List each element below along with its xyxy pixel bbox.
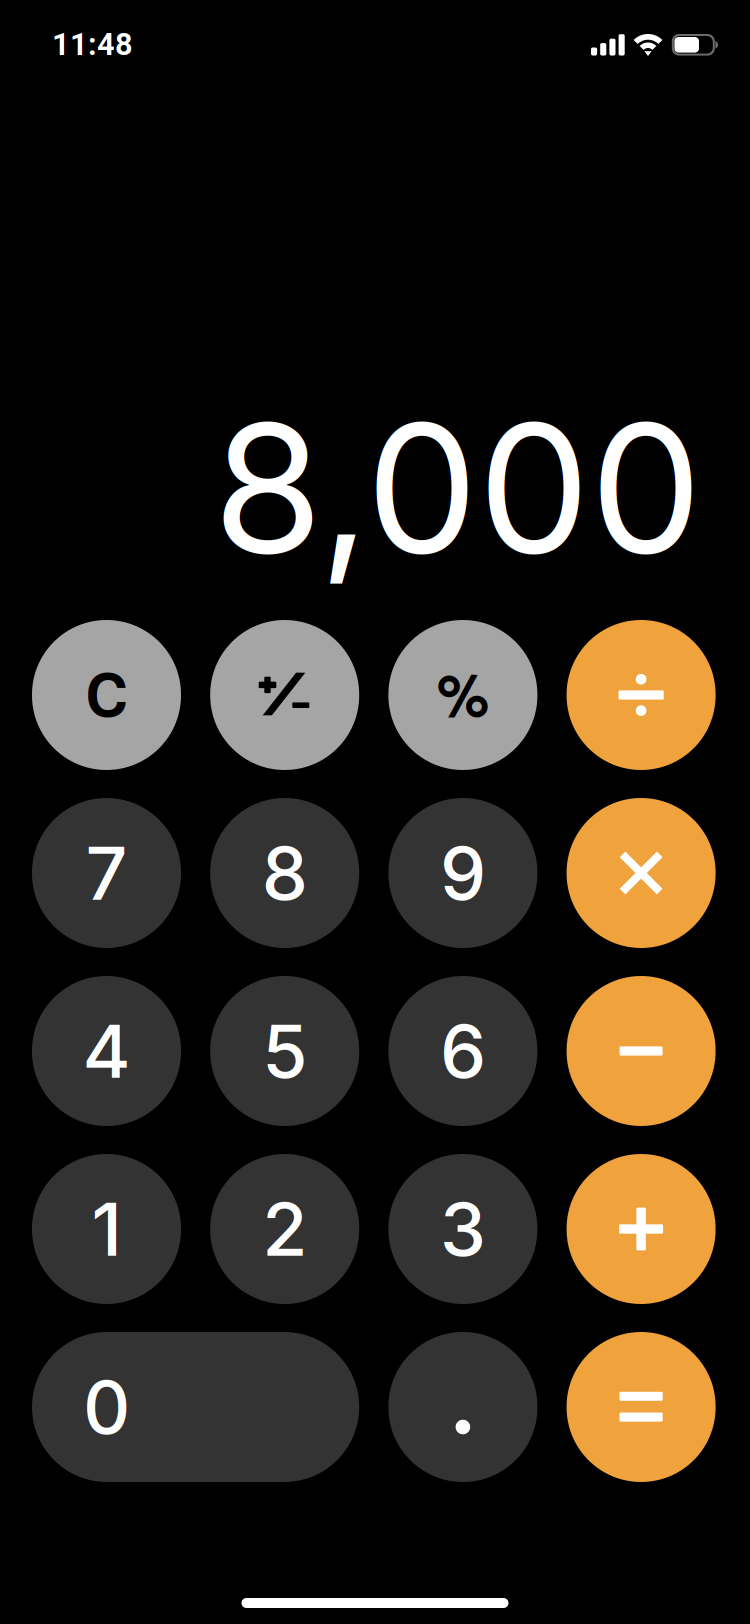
button[interactable]: 9 bbox=[388, 798, 537, 948]
button[interactable]: Multiply bbox=[567, 798, 716, 948]
button[interactable]: Plus bbox=[567, 1154, 716, 1304]
button[interactable]: Divide bbox=[567, 620, 716, 770]
button[interactable]: 7 bbox=[32, 798, 181, 948]
staticText: 9 bbox=[440, 829, 486, 917]
staticText: 8,000 bbox=[213, 381, 702, 595]
staticText: C bbox=[85, 650, 127, 734]
staticText: 11:48 bbox=[52, 26, 133, 62]
button[interactable]: 3 bbox=[388, 1154, 537, 1304]
button[interactable]: Plus Minus bbox=[210, 620, 359, 770]
button[interactable]: 1 bbox=[32, 1154, 181, 1304]
staticText: 8 bbox=[262, 829, 308, 917]
button[interactable]: 4 bbox=[32, 976, 181, 1126]
staticText: 4 bbox=[82, 1007, 130, 1095]
staticText: 0 bbox=[83, 1363, 130, 1451]
staticText: 2 bbox=[262, 1185, 307, 1273]
staticText: 6 bbox=[440, 1007, 486, 1095]
button[interactable]: C bbox=[32, 620, 181, 770]
staticText: % bbox=[437, 650, 489, 734]
button[interactable]: 2 bbox=[210, 1154, 359, 1304]
button[interactable]: 5 bbox=[210, 976, 359, 1126]
button[interactable]: Decimal point bbox=[388, 1332, 537, 1482]
button[interactable]: Minus bbox=[567, 976, 716, 1126]
button[interactable]: 8 bbox=[210, 798, 359, 948]
button[interactable]: 6 bbox=[388, 976, 537, 1126]
staticText: 7 bbox=[85, 829, 127, 917]
button[interactable]: % bbox=[388, 620, 537, 770]
staticText: 3 bbox=[440, 1185, 486, 1273]
staticText: 1 bbox=[91, 1185, 121, 1273]
button[interactable]: Equals bbox=[567, 1332, 716, 1482]
button[interactable]: 0 bbox=[32, 1332, 359, 1482]
staticText: 5 bbox=[262, 1007, 307, 1095]
